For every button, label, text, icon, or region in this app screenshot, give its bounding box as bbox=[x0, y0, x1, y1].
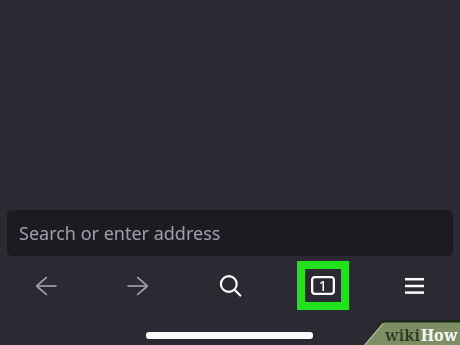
staticText: Search or enter address bbox=[19, 221, 221, 246]
button[interactable]: Search bbox=[208, 263, 252, 307]
staticText: 1 bbox=[319, 276, 328, 295]
button[interactable]: Search or enter address bbox=[7, 210, 453, 256]
button[interactable]: Forward bbox=[115, 264, 159, 308]
button[interactable]: Back bbox=[24, 264, 68, 308]
staticText: How bbox=[421, 324, 458, 345]
button[interactable]: Open tabs, 1 tab bbox=[305, 269, 341, 302]
staticText: wiki bbox=[385, 324, 421, 345]
button[interactable]: Menu bbox=[392, 264, 436, 308]
